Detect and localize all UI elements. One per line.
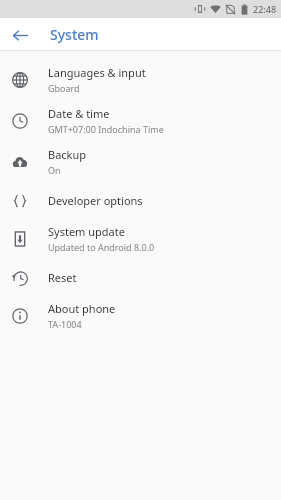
button[interactable]: System update — [0, 218, 281, 259]
button[interactable]: Developer options — [0, 182, 281, 218]
staticText: Reset — [48, 270, 77, 285]
staticText: Updated to Android 8.0.0 — [48, 241, 155, 253]
button[interactable]: Date & time — [0, 100, 281, 141]
staticText: Developer options — [48, 193, 143, 208]
staticText: Backup — [48, 147, 87, 162]
button[interactable]: Reset — [0, 259, 281, 295]
staticText: Date & time — [48, 106, 110, 121]
button[interactable]: Languages & input — [0, 59, 281, 100]
staticText: System update — [48, 224, 125, 239]
button[interactable]: Backup — [0, 141, 281, 182]
staticText: TA-1004 — [48, 318, 82, 330]
staticText: Gboard — [48, 82, 80, 94]
staticText: GMT+07:00 Indochina Time — [48, 123, 164, 135]
button[interactable]: About phone — [0, 295, 281, 336]
button[interactable]: Back — [8, 23, 32, 47]
staticText: System — [50, 25, 99, 44]
staticText: Languages & input — [48, 65, 146, 80]
staticText: 22:48 — [253, 3, 277, 15]
staticText: About phone — [48, 301, 116, 316]
staticText: On — [48, 164, 61, 176]
